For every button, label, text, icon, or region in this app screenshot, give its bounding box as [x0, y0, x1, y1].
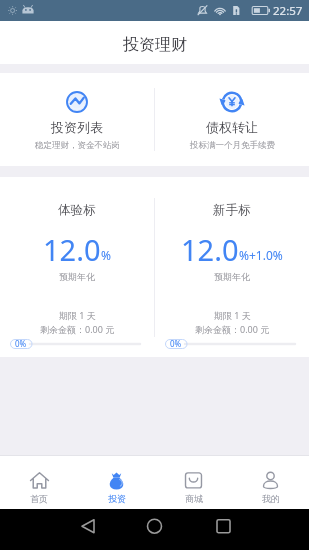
staticText: 投资理财: [123, 35, 187, 55]
staticText: 0%: [170, 338, 182, 349]
staticText: 预期年化: [59, 271, 95, 282]
staticText: 体验标: [58, 202, 96, 218]
staticText: 12.0: [43, 230, 101, 269]
staticText: 首页: [30, 493, 48, 504]
staticText: 商城: [185, 493, 203, 504]
staticText: 债权转让: [206, 119, 258, 135]
staticText: 新手标: [213, 202, 251, 218]
staticText: %: [101, 247, 111, 263]
staticText: 我的: [262, 493, 280, 504]
staticText: 投资列表: [51, 119, 103, 135]
button[interactable]: 我的: [232, 456, 309, 509]
button[interactable]: 投资: [78, 456, 155, 509]
staticText: 期限 1 天: [214, 309, 251, 321]
button[interactable]: 新手标: [155, 177, 309, 357]
staticText: 剩余金额：0.00 元: [40, 323, 115, 335]
button[interactable]: 投资列表: [0, 73, 154, 166]
staticText: 预期年化: [214, 271, 250, 282]
staticText: 期限 1 天: [59, 309, 96, 321]
staticText: 稳定理财，资金不站岗: [35, 140, 120, 151]
button[interactable]: 商城: [155, 456, 232, 509]
staticText: 12.0: [181, 230, 239, 269]
staticText: 剩余金额：0.00 元: [195, 323, 270, 335]
staticText: 投标满一个月免手续费: [190, 140, 275, 151]
button[interactable]: 首页: [0, 456, 78, 509]
button[interactable]: 体验标: [0, 177, 154, 357]
staticText: 22:57: [273, 3, 303, 19]
staticText: %+1.0%: [239, 247, 283, 263]
button[interactable]: 债权转让: [155, 73, 309, 166]
staticText: 0%: [15, 338, 27, 349]
staticText: 投资: [108, 493, 126, 504]
